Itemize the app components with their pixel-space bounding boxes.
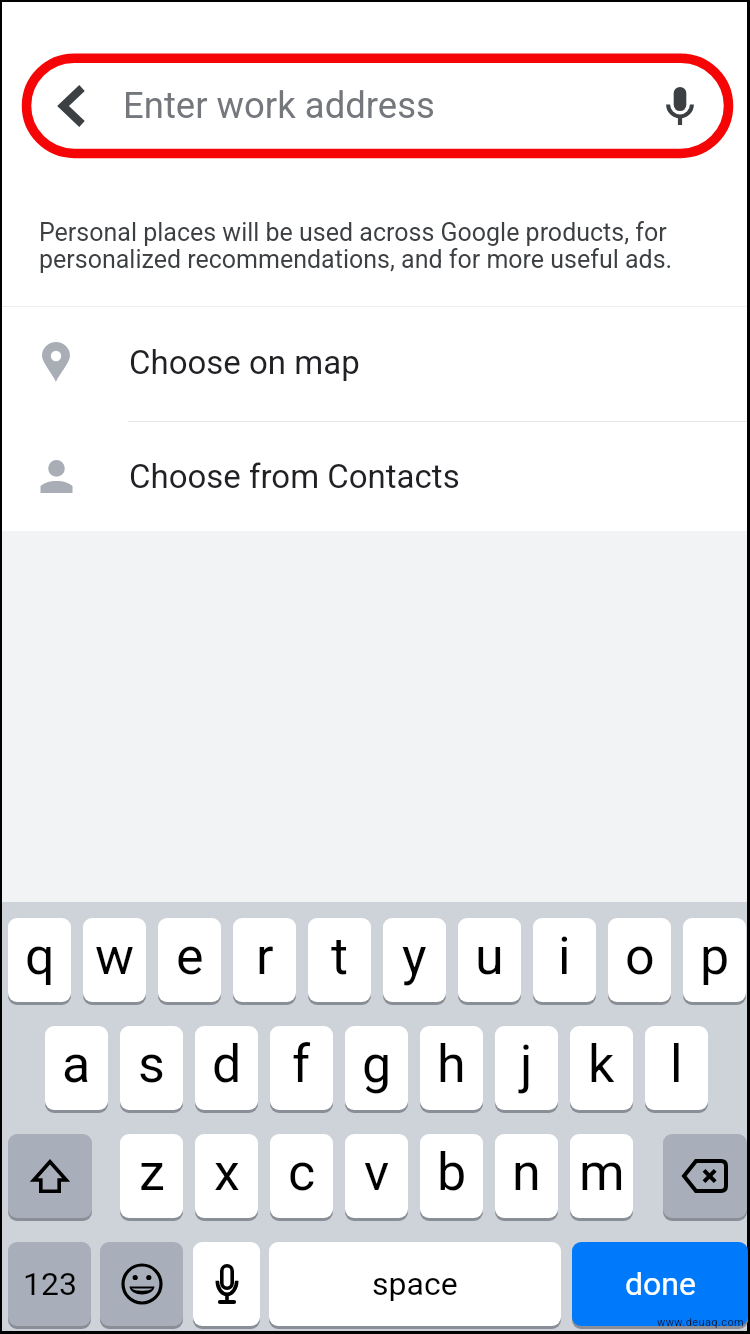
staticText: 123 <box>23 1265 77 1303</box>
staticText: c <box>288 1142 316 1203</box>
staticText: k <box>588 1034 615 1095</box>
button[interactable]: w <box>83 918 146 1002</box>
button[interactable]: t <box>308 918 371 1002</box>
button[interactable]: o <box>608 918 671 1002</box>
button[interactable]: b <box>420 1134 483 1218</box>
button[interactable]: k <box>570 1026 633 1110</box>
button[interactable]: d <box>195 1026 258 1110</box>
staticText: Personal places will be used across Goog… <box>39 218 673 274</box>
button[interactable]: Voice input <box>193 1242 260 1326</box>
staticText: Choose from Contacts <box>129 457 460 496</box>
button[interactable]: p <box>683 918 746 1002</box>
button[interactable]: j <box>495 1026 558 1110</box>
staticText: a <box>62 1034 91 1095</box>
button[interactable] <box>22 54 733 157</box>
button[interactable]: e <box>158 918 221 1002</box>
button[interactable]: Back <box>26 54 118 157</box>
staticText: Choose on map <box>129 343 360 382</box>
staticText: m <box>579 1142 625 1203</box>
button[interactable]: Choose from Contacts <box>2 419 747 533</box>
staticText: w <box>95 926 135 987</box>
staticText: e <box>176 926 204 987</box>
staticText: f <box>292 1034 311 1095</box>
button[interactable]: r <box>233 918 296 1002</box>
staticText: www.deuaq.com <box>657 1316 745 1329</box>
staticText: i <box>558 926 571 987</box>
staticText: h <box>437 1034 466 1095</box>
button[interactable]: u <box>458 918 521 1002</box>
button[interactable]: g <box>345 1026 408 1110</box>
staticText: u <box>475 926 504 987</box>
staticText: j <box>520 1034 533 1095</box>
staticText: Enter work address <box>123 84 435 127</box>
button[interactable]: Backspace <box>663 1134 747 1218</box>
button[interactable]: f <box>270 1026 333 1110</box>
staticText: z <box>139 1142 165 1203</box>
staticText: n <box>512 1142 541 1203</box>
button[interactable]: 123 <box>8 1242 91 1326</box>
button[interactable]: Emoji <box>100 1242 183 1326</box>
staticText: y <box>402 926 427 987</box>
staticText: done <box>625 1265 696 1303</box>
button[interactable]: c <box>270 1134 333 1218</box>
button[interactable]: q <box>8 918 71 1002</box>
button[interactable]: Shift <box>8 1134 92 1218</box>
button[interactable]: Voice search <box>634 54 726 157</box>
button[interactable]: v <box>345 1134 408 1218</box>
button[interactable]: n <box>495 1134 558 1218</box>
staticText: r <box>256 926 274 987</box>
button[interactable]: y <box>383 918 446 1002</box>
staticText: x <box>214 1142 240 1203</box>
staticText: l <box>670 1034 683 1095</box>
button[interactable]: a <box>45 1026 108 1110</box>
staticText: q <box>25 926 55 987</box>
staticText: g <box>362 1034 392 1095</box>
button[interactable]: done <box>572 1242 748 1326</box>
staticText: s <box>138 1034 165 1095</box>
staticText: p <box>700 926 730 987</box>
staticText: v <box>364 1142 390 1203</box>
staticText: b <box>437 1142 467 1203</box>
staticText: t <box>331 926 349 987</box>
staticText: space <box>372 1265 458 1303</box>
button[interactable]: space <box>269 1242 561 1326</box>
button[interactable]: m <box>570 1134 633 1218</box>
button[interactable]: x <box>195 1134 258 1218</box>
button[interactable]: i <box>533 918 596 1002</box>
staticText: d <box>212 1034 242 1095</box>
button[interactable]: Choose on map <box>2 305 747 419</box>
button[interactable]: s <box>120 1026 183 1110</box>
staticText: o <box>625 926 655 987</box>
button[interactable]: z <box>120 1134 183 1218</box>
button[interactable]: l <box>645 1026 708 1110</box>
button[interactable]: h <box>420 1026 483 1110</box>
